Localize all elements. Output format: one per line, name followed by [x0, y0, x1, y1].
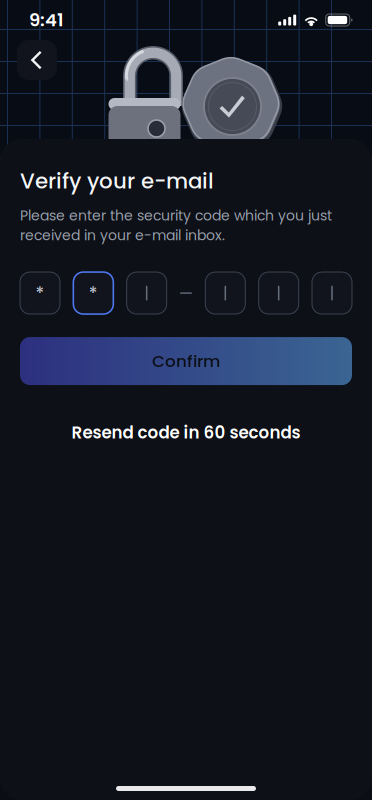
button[interactable]: Back — [17, 40, 57, 80]
staticText: * — [89, 281, 98, 305]
staticText: 9:41 — [29, 7, 64, 33]
staticText: Please enter the security code which you… — [20, 206, 332, 245]
staticText: * — [35, 281, 44, 305]
button[interactable]: Code digit empty — [127, 272, 167, 314]
staticText: Confirm — [152, 349, 220, 373]
button[interactable]: Code digit empty — [259, 272, 299, 314]
staticText: Verify your e-mail — [20, 166, 214, 196]
button[interactable]: Code digit entered — [73, 272, 113, 314]
button[interactable]: Confirm — [20, 337, 352, 385]
button[interactable]: Code digit entered — [20, 272, 60, 314]
button[interactable]: Code digit empty — [205, 272, 245, 314]
button[interactable]: Resend code in 60 seconds — [20, 421, 352, 444]
button[interactable]: Code digit empty — [312, 272, 352, 314]
staticText: Resend code in 60 seconds — [71, 421, 300, 444]
